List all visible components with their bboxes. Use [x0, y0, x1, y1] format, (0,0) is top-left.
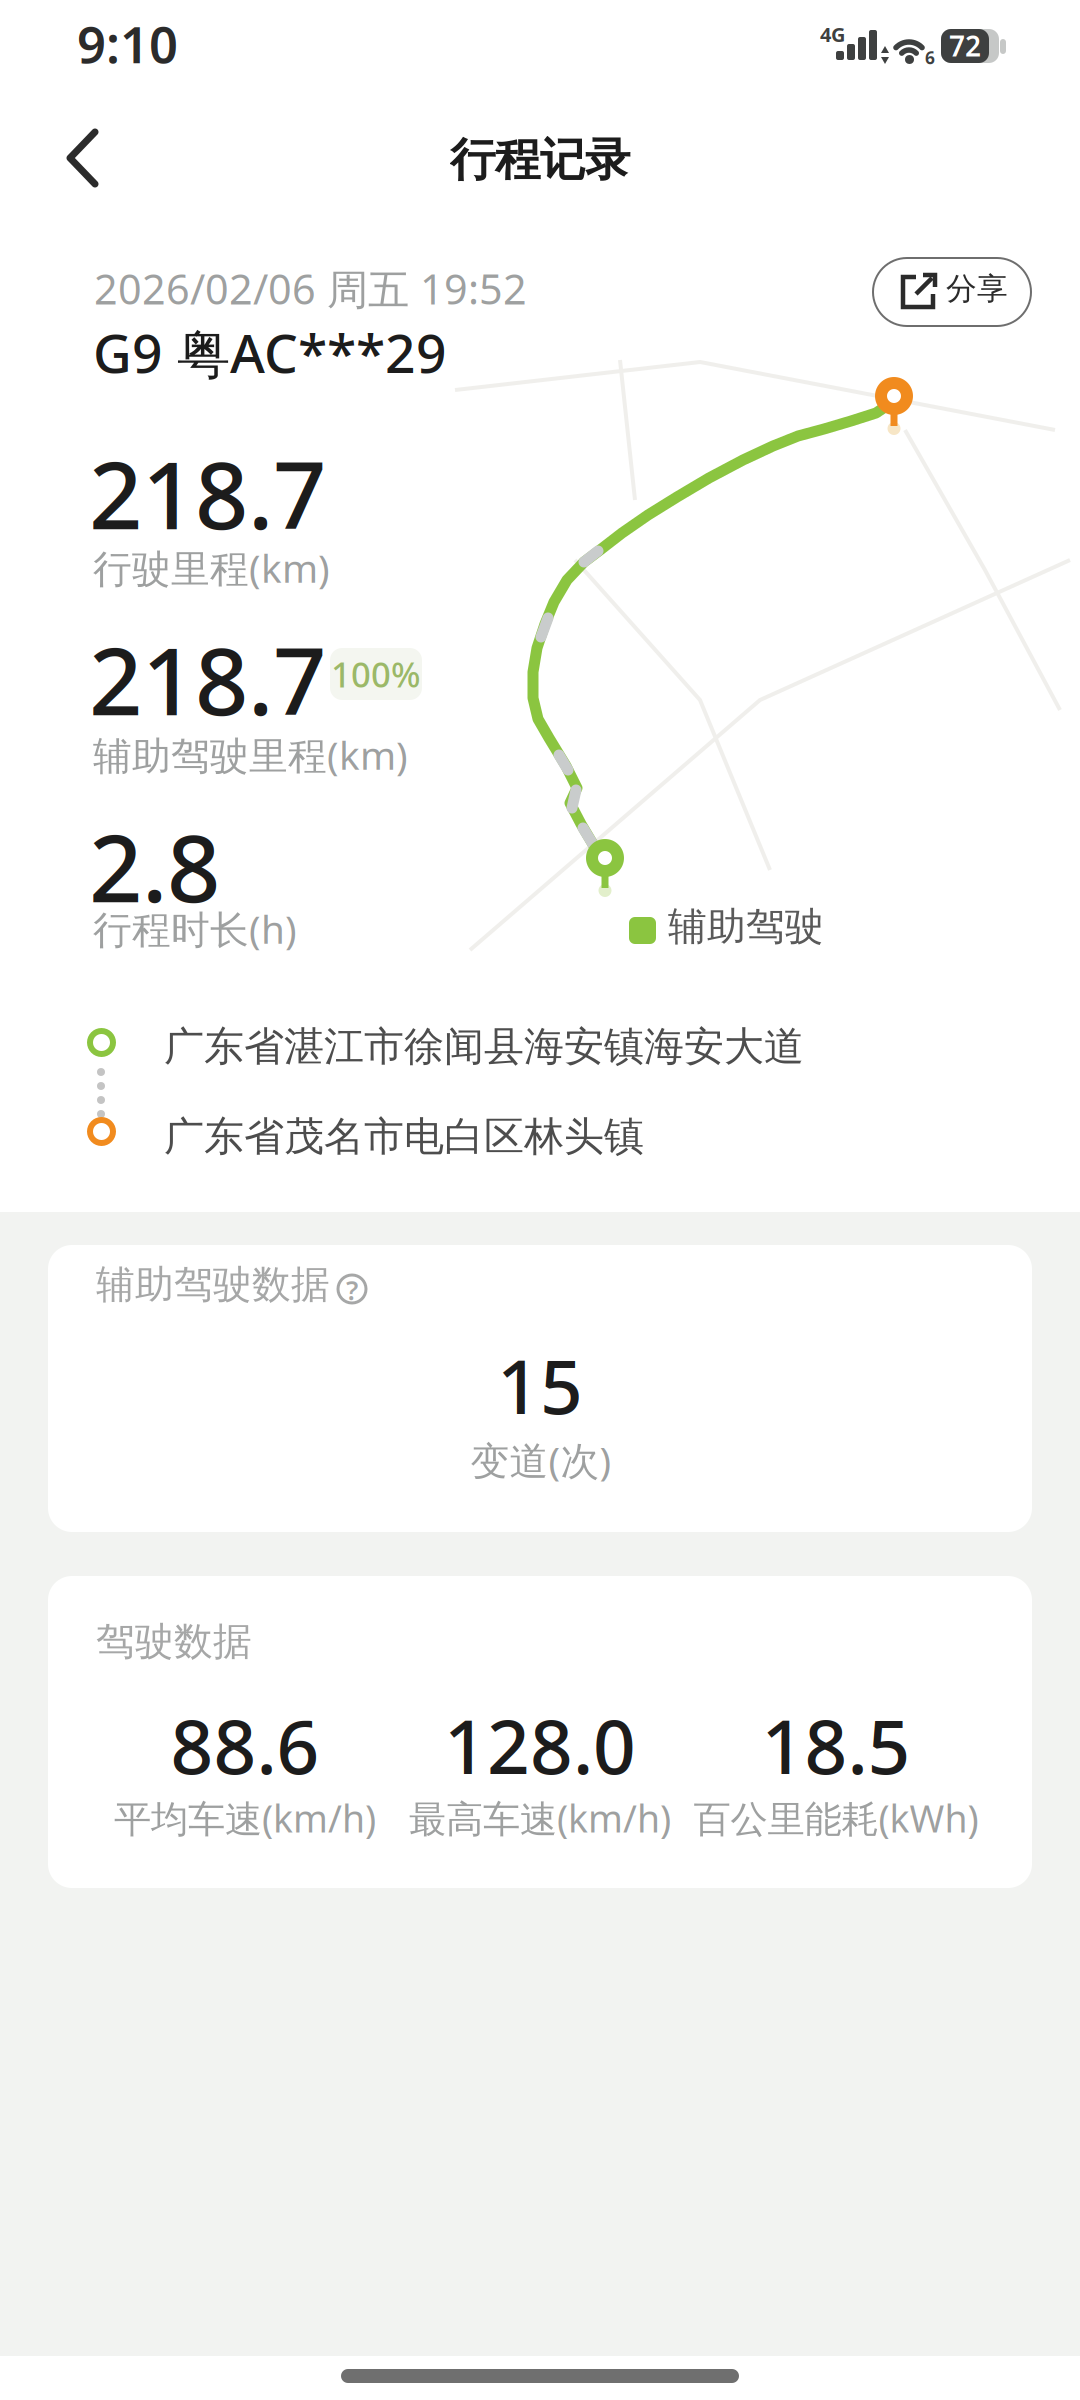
- staticText: 4G: [820, 21, 845, 48]
- staticText: 218.7: [89, 431, 326, 555]
- staticText: 行程时长(h): [93, 903, 297, 954]
- staticText: 18.5: [761, 1695, 910, 1795]
- staticText: 9:10: [77, 10, 178, 77]
- staticText: 72: [949, 27, 981, 64]
- button[interactable]: 辅助驾驶数据说明: [334, 1271, 370, 1307]
- staticText: 88.6: [170, 1695, 319, 1795]
- staticText: G9 粤AC***29: [93, 317, 447, 388]
- button[interactable]: 分享: [872, 257, 1032, 327]
- staticText: 变道(次): [470, 1434, 611, 1486]
- staticText: 分享: [946, 270, 1008, 308]
- staticText: 最高车速(km/h): [409, 1793, 671, 1843]
- staticText: 2.8: [89, 804, 220, 928]
- staticText: 218.7: [89, 617, 326, 741]
- staticText: 辅助驾驶: [668, 903, 824, 950]
- button[interactable]: Back: [40, 119, 130, 197]
- staticText: 广东省茂名市电白区林头镇: [164, 1112, 644, 1161]
- staticText: ?: [346, 1272, 358, 1308]
- staticText: 驾驶数据: [96, 1618, 252, 1665]
- staticText: 广东省湛江市徐闻县海安镇海安大道: [164, 1022, 804, 1071]
- staticText: 15: [497, 1335, 583, 1435]
- staticText: 128.0: [444, 1695, 636, 1795]
- staticText: 百公里能耗(kWh): [693, 1793, 978, 1843]
- staticText: 辅助驾驶数据: [96, 1261, 330, 1308]
- staticText: 100%: [331, 651, 421, 697]
- staticText: 行驶里程(km): [93, 542, 330, 593]
- staticText: 行程记录: [450, 132, 630, 188]
- staticText: 辅助驾驶里程(km): [93, 729, 408, 780]
- staticText: 6: [925, 46, 935, 69]
- staticText: 平均车速(km/h): [114, 1793, 376, 1843]
- staticText: 2026/02/06 周五 19:52: [94, 261, 527, 316]
